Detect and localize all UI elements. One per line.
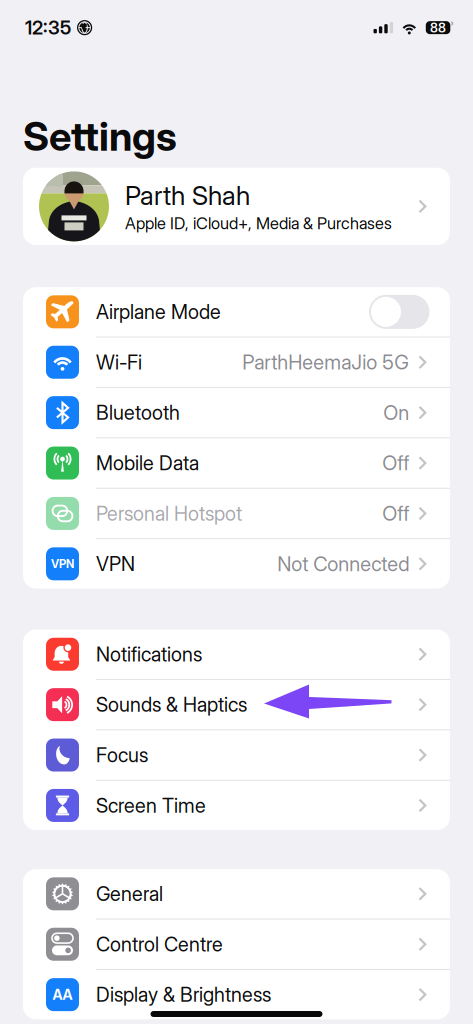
button[interactable]: Screen Time [23, 781, 450, 830]
staticText: Apple ID, iCloud+, Media & Purchases [125, 213, 392, 233]
staticText: Personal Hotspot [96, 501, 242, 525]
staticText: Off [382, 501, 409, 526]
button[interactable]: Personal Hotspot [23, 489, 450, 538]
staticText: Not Connected [277, 552, 409, 576]
staticText: On [383, 401, 409, 425]
staticText: Mobile Data [96, 451, 199, 475]
button[interactable]: Wi-Fi [23, 337, 450, 387]
staticText: VPN [96, 552, 135, 576]
staticText: Sounds & Haptics [96, 693, 247, 717]
staticText: Airplane Mode [96, 300, 221, 324]
button[interactable]: AA [23, 970, 450, 1019]
button[interactable]: General [23, 869, 450, 918]
staticText: 12:35 [25, 16, 71, 39]
button[interactable]: Sounds & Haptics [23, 680, 450, 729]
staticText: Bluetooth [96, 401, 180, 425]
staticText: AA [52, 986, 72, 1003]
button[interactable]: Focus [23, 730, 450, 780]
staticText: General [96, 882, 163, 906]
button[interactable]: Airplane Mode [23, 287, 450, 336]
staticText: 88 [430, 20, 446, 35]
button[interactable]: Mobile Data [23, 438, 450, 488]
staticText: Parth Shah [125, 180, 250, 211]
staticText: ParthHeemaJio 5G [242, 350, 409, 374]
staticText: VPN [51, 557, 74, 571]
staticText: Control Centre [96, 932, 223, 956]
button[interactable]: Parth Shah [23, 168, 450, 245]
button[interactable]: VPN [23, 539, 450, 588]
staticText: Settings [23, 112, 177, 160]
button[interactable]: Bluetooth [23, 388, 450, 437]
staticText: Focus [96, 743, 148, 767]
staticText: Wi-Fi [96, 350, 142, 374]
staticText: Screen Time [96, 793, 206, 817]
button[interactable]: Control Centre [23, 919, 450, 969]
button[interactable]: Notifications [23, 629, 450, 679]
staticText: Notifications [96, 642, 202, 666]
staticText: Display & Brightness [96, 983, 271, 1007]
staticText: Off [382, 451, 409, 475]
